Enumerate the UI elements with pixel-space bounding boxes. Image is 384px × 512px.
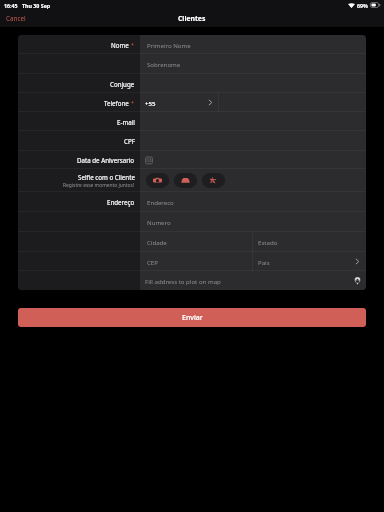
staticText: Data de Aniversario xyxy=(77,156,135,164)
button[interactable]: Pick date xyxy=(145,156,153,164)
staticText: Pais xyxy=(258,258,270,266)
button[interactable]: Remove photo xyxy=(202,173,225,188)
staticText: Nome xyxy=(111,41,129,49)
button[interactable]: Cidade xyxy=(140,232,252,252)
button[interactable]: Numero xyxy=(140,212,366,232)
button[interactable]: Enviar xyxy=(18,308,366,327)
staticText: Cidade xyxy=(147,238,167,246)
staticText: Registre esse momento juntos! xyxy=(63,182,135,189)
staticText: * xyxy=(131,41,135,48)
button[interactable]: Take photo xyxy=(146,173,169,188)
staticText: E-mail xyxy=(117,118,135,126)
button[interactable]: Sobrenome xyxy=(140,54,366,74)
staticText: Estado xyxy=(258,238,278,246)
staticText: CPF xyxy=(124,137,135,145)
staticText: Sobrenome xyxy=(147,60,181,68)
button[interactable]: Choose from gallery xyxy=(174,173,197,188)
staticText: Numero xyxy=(147,218,171,226)
staticText: +55 xyxy=(145,99,156,107)
staticText: Conjuge xyxy=(110,80,135,88)
button[interactable]: Cancel xyxy=(6,14,26,23)
staticText: 69% xyxy=(357,2,368,9)
staticText: Primeiro Nome xyxy=(147,41,191,49)
staticText: * xyxy=(131,99,135,106)
staticText: Endereco xyxy=(147,198,174,206)
staticText: Cancel xyxy=(6,14,26,23)
staticText: Endereço xyxy=(107,198,135,206)
staticText: Enviar xyxy=(182,313,203,323)
staticText: Thu 30 Sep xyxy=(22,2,51,9)
staticText: Selfie com o Cliente xyxy=(78,173,135,181)
staticText: Telefone xyxy=(104,99,129,107)
button[interactable]: CEP xyxy=(140,252,252,271)
staticText: Clientes xyxy=(178,14,206,23)
button[interactable]: Pais xyxy=(253,252,366,271)
button[interactable]: Primeiro Nome xyxy=(140,35,366,54)
button[interactable]: Endereco xyxy=(140,192,366,212)
button[interactable]: +55 xyxy=(140,93,218,112)
button[interactable]: Fill address to plot on map xyxy=(140,271,366,290)
button[interactable]: Estado xyxy=(253,232,366,252)
staticText: 16:45 xyxy=(4,2,18,9)
staticText: CEP xyxy=(147,258,158,266)
staticText: Fill address to plot on map xyxy=(145,277,221,285)
